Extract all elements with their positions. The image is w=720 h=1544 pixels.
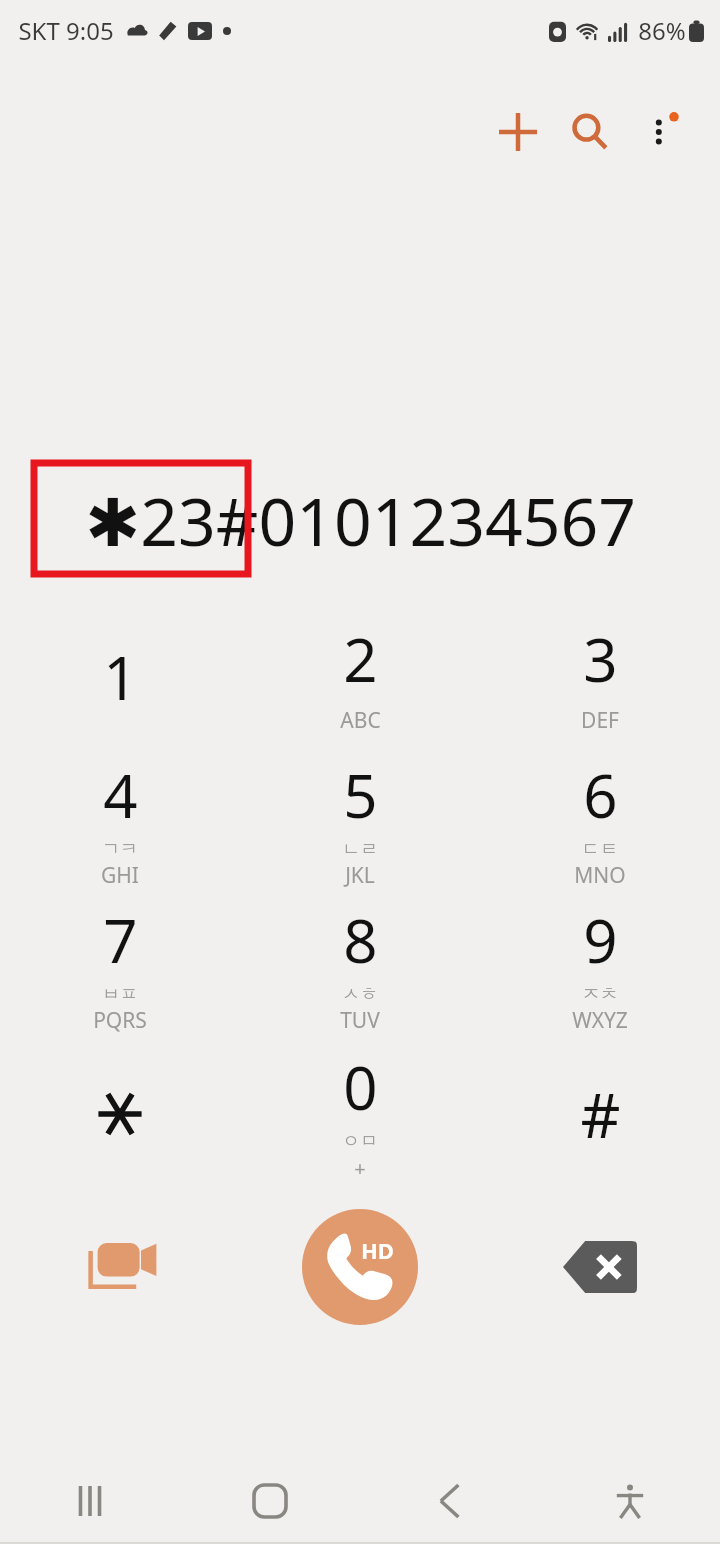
staticText: 8 xyxy=(343,899,378,981)
button[interactable]: Backspace xyxy=(480,1204,720,1330)
button[interactable]: 2 xyxy=(240,612,480,757)
staticText: 1 xyxy=(103,636,138,718)
staticText: ㅇㅁ xyxy=(342,1130,378,1153)
staticText: DEF xyxy=(581,706,619,735)
staticText: 0 xyxy=(343,1046,378,1128)
button[interactable]: 4 xyxy=(0,757,240,902)
button[interactable]: 0 xyxy=(240,1047,480,1192)
staticText: WXYZ xyxy=(572,1006,628,1035)
staticText: # xyxy=(580,1072,621,1156)
button[interactable]: Video call xyxy=(0,1204,240,1330)
button[interactable]: 8 xyxy=(240,902,480,1047)
staticText: ㅈㅊ xyxy=(582,983,618,1006)
button[interactable]: Search xyxy=(554,96,626,168)
button[interactable]: 9 xyxy=(480,902,720,1047)
staticText: ㅂㅍ xyxy=(102,983,138,1006)
button[interactable]: Recents xyxy=(0,1460,180,1542)
button[interactable]: Add contact xyxy=(482,96,554,168)
staticText: GHI xyxy=(101,861,139,890)
staticText: TUV xyxy=(340,1006,380,1035)
staticText: ㄷㅌ xyxy=(582,838,618,861)
staticText: JKL xyxy=(345,861,375,890)
button[interactable]: More options xyxy=(626,96,698,168)
staticText: ㅅㅎ xyxy=(342,983,378,1006)
staticText: 2 xyxy=(343,618,378,700)
staticText: + xyxy=(354,1155,366,1182)
button[interactable]: Back xyxy=(360,1460,540,1542)
staticText: ✱23#0101234567 xyxy=(85,475,636,565)
staticText: ㄴㄹ xyxy=(342,838,378,861)
staticText: 9 xyxy=(583,899,618,981)
staticText: PQRS xyxy=(93,1006,147,1035)
staticText: 7 xyxy=(103,899,138,981)
button[interactable]: Home xyxy=(180,1460,360,1542)
button[interactable]: 6 xyxy=(480,757,720,902)
staticText: 6 xyxy=(583,754,618,836)
button[interactable]: # xyxy=(480,1047,720,1192)
button[interactable]: 5 xyxy=(240,757,480,902)
staticText: 3 xyxy=(583,618,618,700)
staticText: 5 xyxy=(343,754,378,836)
button[interactable]: 3 xyxy=(480,612,720,757)
button[interactable]: Call xyxy=(302,1209,418,1325)
button[interactable]: Accessibility xyxy=(540,1460,720,1542)
button[interactable]: 1 xyxy=(0,612,240,757)
staticText: SKT 9:05 xyxy=(18,14,114,47)
button[interactable]: 7 xyxy=(0,902,240,1047)
button[interactable] xyxy=(0,1047,240,1192)
staticText: ㄱㅋ xyxy=(102,838,138,861)
staticText: 4 xyxy=(103,754,138,836)
staticText: ABC xyxy=(340,706,381,735)
staticText: 86% xyxy=(638,14,686,47)
staticText: MNO xyxy=(574,861,626,890)
staticText: HD xyxy=(361,1235,394,1265)
